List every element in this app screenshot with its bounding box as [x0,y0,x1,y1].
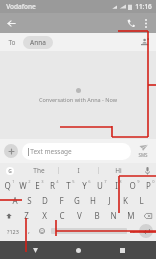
button[interactable]: Space [51,228,127,234]
staticText: F [59,195,64,206]
staticText: , [28,226,30,236]
staticText: X [42,210,47,221]
button[interactable]: More options [139,16,153,30]
staticText: L [139,195,144,206]
staticText: Anna [30,38,46,47]
button[interactable]: Add contact [138,35,152,49]
staticText: B [94,210,100,221]
button[interactable]: O [124,178,140,193]
button[interactable]: Text message [22,143,131,160]
staticText: 7 [104,179,107,184]
staticText: H [90,195,96,206]
staticText: The [33,166,45,175]
staticText: Hi [115,166,122,175]
button[interactable]: J [101,193,117,208]
staticText: Vodafone [6,2,36,11]
button[interactable]: Home [69,241,87,259]
button[interactable]: Recent apps [113,241,131,259]
staticText: C [59,210,65,221]
button[interactable]: H [85,193,101,208]
staticText: . [133,226,135,236]
staticText: To [8,38,16,47]
button[interactable]: X [35,208,53,223]
staticText: 5 [72,179,75,184]
staticText: W [19,180,27,191]
staticText: 0 [152,179,155,184]
staticText: K [123,195,128,206]
button[interactable]: Q [0,178,15,193]
staticText: 4 [56,179,59,184]
button[interactable]: R [45,178,60,193]
staticText: 8 [119,179,122,184]
staticText: 3 [41,179,44,184]
staticText: R [50,180,55,191]
button[interactable]: Back [3,15,19,31]
button[interactable]: Back [26,241,44,259]
button[interactable]: Z [17,208,35,223]
button[interactable]: M [122,208,139,223]
button[interactable]: , [23,223,35,239]
button[interactable]: I [59,163,98,178]
staticText: 11:16 [135,2,152,11]
button[interactable]: A [7,193,22,208]
staticText: I [115,180,118,191]
button[interactable]: N [105,208,122,223]
button[interactable]: F [53,193,69,208]
button[interactable]: B [88,208,105,223]
staticText: M [127,210,135,221]
staticText: 6 [88,179,91,184]
button[interactable]: G [69,193,85,208]
button[interactable]: Y [76,178,92,193]
staticText: A [12,195,18,206]
staticText: SMS [138,152,148,158]
staticText: ?123 [7,228,19,235]
staticText: Conversation with Anna - Now [39,96,117,103]
button[interactable]: T [60,178,76,193]
button[interactable]: P [140,178,156,193]
button[interactable]: W [15,178,30,193]
staticText: 1 [12,179,15,184]
staticText: V [77,210,82,221]
button[interactable]: S [22,193,37,208]
staticText: 2 [28,179,31,184]
staticText: G [8,168,12,175]
staticText: G [74,195,80,206]
staticText: S [27,195,32,206]
button[interactable]: V [71,208,88,223]
button[interactable]: Add attachment [4,144,18,158]
staticText: P [146,180,151,191]
staticText: 9 [137,179,140,184]
button[interactable]: Anna [23,36,53,49]
button[interactable]: Voice input [138,163,156,178]
button[interactable]: D [37,193,53,208]
button[interactable]: Hi [99,163,138,178]
button[interactable]: Delete [139,208,156,223]
staticText: D [42,195,48,206]
staticText: N [110,210,117,221]
button[interactable]: U [92,178,108,193]
button[interactable]: ?123 [3,223,23,239]
button[interactable]: K [117,193,133,208]
button[interactable]: Emoji [35,223,49,239]
staticText: O [129,180,136,191]
button[interactable]: Google [0,163,20,178]
button[interactable]: Enter [139,224,153,238]
button[interactable]: E [30,178,45,193]
button[interactable]: Shift [0,208,17,223]
staticText: U [97,180,103,191]
staticText: Y [82,180,87,191]
button[interactable]: C [53,208,71,223]
button[interactable]: L [133,193,149,208]
button[interactable]: The [20,163,58,178]
staticText: Q [4,180,11,191]
staticText: I [77,166,80,175]
staticText: J [108,195,111,206]
staticText: Text message [30,147,72,156]
staticText: E [35,180,40,191]
staticText: T [66,180,71,191]
button[interactable]: . [129,223,139,239]
button[interactable]: Send SMS [134,144,152,158]
staticText: Z [24,210,29,221]
button[interactable]: Call [123,15,139,31]
button[interactable]: I [108,178,124,193]
